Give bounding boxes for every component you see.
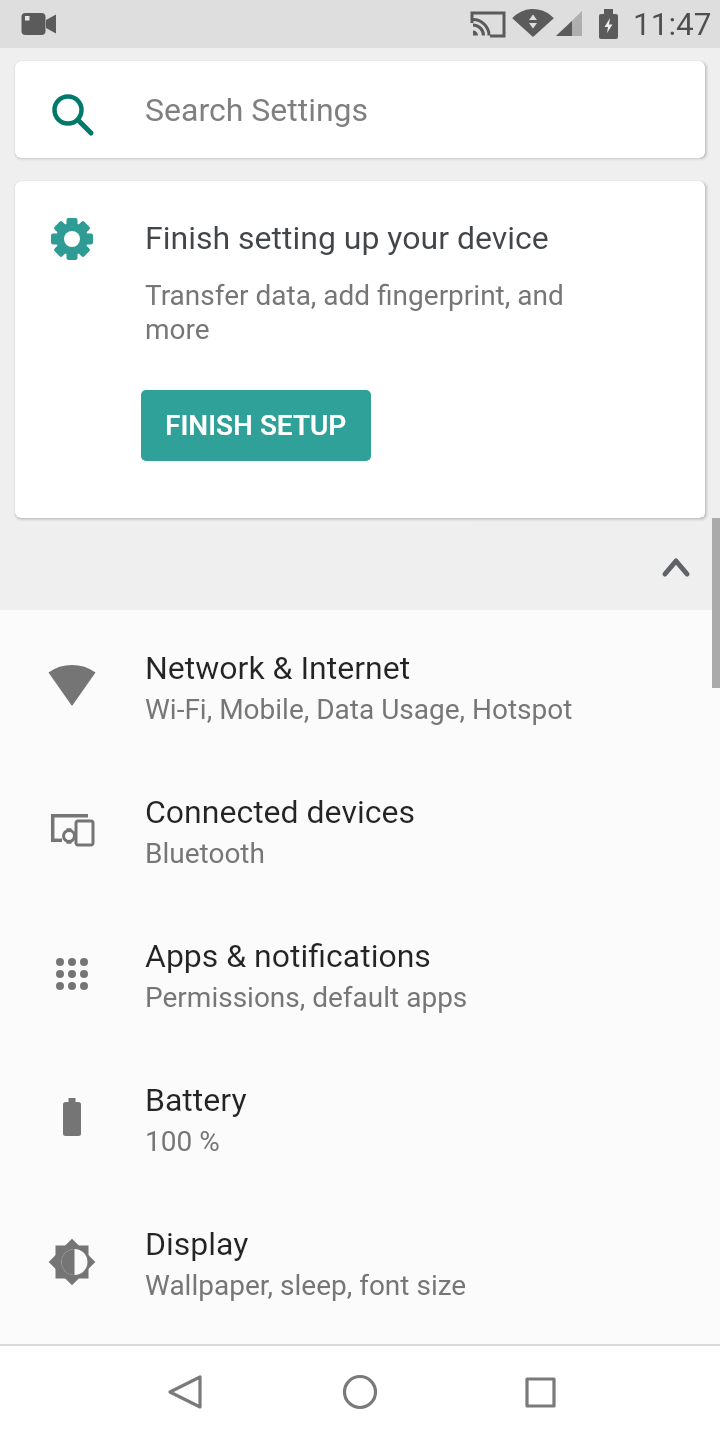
button[interactable]: Display <box>0 1190 720 1334</box>
button[interactable]: Search Settings <box>15 61 705 158</box>
staticText: Bluetooth <box>145 837 265 870</box>
staticText: Permissions, default apps <box>145 981 468 1014</box>
button[interactable]: Network & Internet <box>0 614 720 758</box>
button[interactable] <box>510 1362 570 1422</box>
staticText: Search Settings <box>145 91 369 129</box>
button[interactable]: Apps & notifications <box>0 902 720 1046</box>
button[interactable] <box>330 1362 390 1422</box>
staticText: Wi-Fi, Mobile, Data Usage, Hotspot <box>145 693 573 726</box>
button[interactable]: Connected devices <box>0 758 720 902</box>
staticText: 100 % <box>145 1125 220 1158</box>
staticText: Transfer data, add fingerprint, and more <box>145 279 564 346</box>
staticText: FINISH SETUP <box>165 409 347 442</box>
staticText: Network & Internet <box>145 649 411 687</box>
button[interactable] <box>647 540 707 600</box>
button[interactable] <box>150 1362 210 1422</box>
staticText: 11:47 <box>633 6 712 43</box>
staticText: Battery <box>145 1081 247 1119</box>
button[interactable]: FINISH SETUP <box>141 390 371 461</box>
staticText: Connected devices <box>145 793 415 831</box>
staticText: Wallpaper, sleep, font size <box>145 1269 467 1302</box>
staticText: Apps & notifications <box>145 937 431 975</box>
staticText: Display <box>145 1225 249 1263</box>
button[interactable]: Battery <box>0 1046 720 1190</box>
staticText: Finish setting up your device <box>145 219 549 257</box>
